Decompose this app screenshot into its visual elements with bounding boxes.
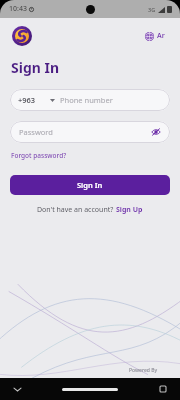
staticText: Password <box>19 127 53 137</box>
staticText: Don't have an account? <box>37 205 116 215</box>
staticText: Powered By <box>129 367 158 374</box>
staticText: Ar <box>157 31 165 41</box>
staticText: Phone number <box>60 95 113 105</box>
button[interactable]: +963 <box>10 89 170 111</box>
staticText: Sign In <box>77 180 103 190</box>
staticText: 10:43 <box>9 4 27 14</box>
button[interactable]: Ar <box>142 28 168 44</box>
button[interactable]: Sign In <box>10 175 170 195</box>
button[interactable]: Home <box>62 384 118 394</box>
button[interactable]: Show password <box>150 126 162 138</box>
button[interactable]: Back <box>12 384 22 394</box>
staticText: +963 <box>18 95 36 105</box>
button[interactable]: App logo <box>12 26 32 46</box>
button[interactable]: Password <box>10 121 170 143</box>
staticText: 3G <box>148 6 156 13</box>
button[interactable]: Forgot password? <box>11 150 67 161</box>
button[interactable]: Sign Up <box>116 204 143 216</box>
staticText: Sign In <box>11 58 60 77</box>
button[interactable]: Recent apps <box>158 384 168 394</box>
